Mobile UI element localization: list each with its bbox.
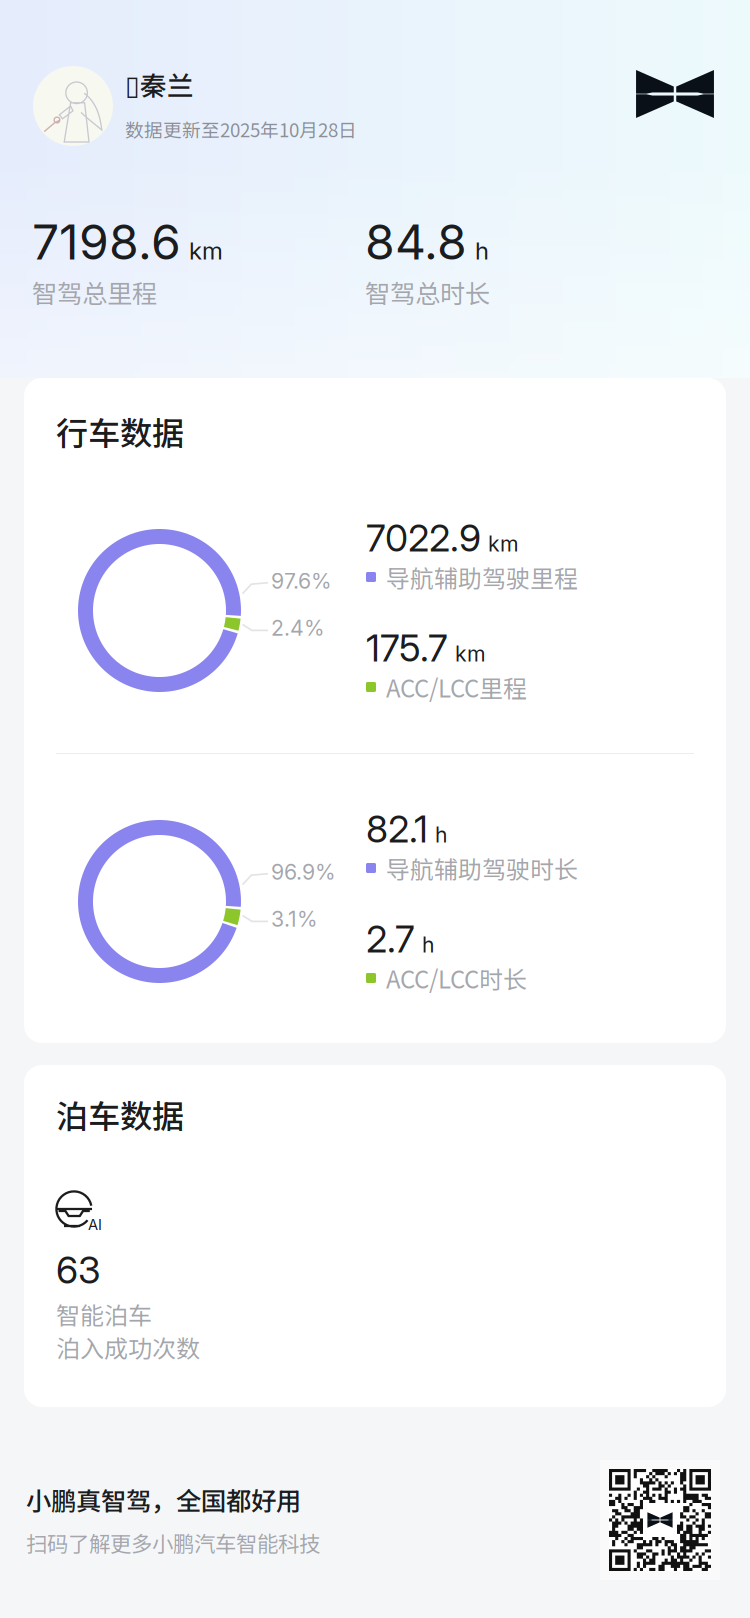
staticText: 84.8 (365, 213, 467, 271)
staticText: 智能泊车 (56, 1297, 152, 1331)
staticText: km (488, 531, 519, 557)
staticText: ACC/LCC里程 (386, 670, 527, 704)
staticText: 97.6% (271, 568, 332, 594)
staticText: 7198.6 (32, 213, 181, 271)
staticText: km (189, 236, 223, 265)
staticText: AI (88, 1216, 102, 1233)
staticText: 导航辅助驾驶时长 (386, 851, 578, 885)
staticText: 96.9% (271, 859, 336, 885)
staticText: h (422, 932, 435, 958)
staticText: ▯秦兰 (125, 65, 194, 103)
staticText: ACC/LCC时长 (386, 961, 527, 995)
staticText: 数据更新至2025年10月28日 (125, 115, 357, 142)
staticText: 行车数据 (56, 408, 184, 454)
staticText: 2.7 (366, 916, 415, 962)
staticText: 175.7 (366, 625, 448, 671)
staticText: 泊入成功次数 (56, 1330, 200, 1364)
button[interactable]: 扫码了解更多 (600, 1460, 720, 1580)
staticText: 63 (56, 1247, 101, 1293)
staticText: 扫码了解更多小鹏汽车智能科技 (26, 1527, 320, 1558)
staticText: 7022.9 (366, 515, 481, 561)
staticText: 智驾总时长 (365, 274, 490, 310)
staticText: h (475, 236, 489, 265)
button[interactable]: 小鹏汽车 (634, 70, 716, 118)
staticText: 2.4% (271, 615, 325, 641)
staticText: 智驾总里程 (32, 274, 157, 310)
staticText: h (435, 822, 448, 848)
staticText: 小鹏真智驾，全国都好用 (26, 1481, 301, 1518)
staticText: 3.1% (271, 906, 318, 932)
staticText: 泊车数据 (56, 1091, 184, 1137)
staticText: 82.1 (366, 806, 428, 852)
staticText: 导航辅助驾驶里程 (386, 560, 578, 594)
staticText: km (455, 641, 486, 667)
